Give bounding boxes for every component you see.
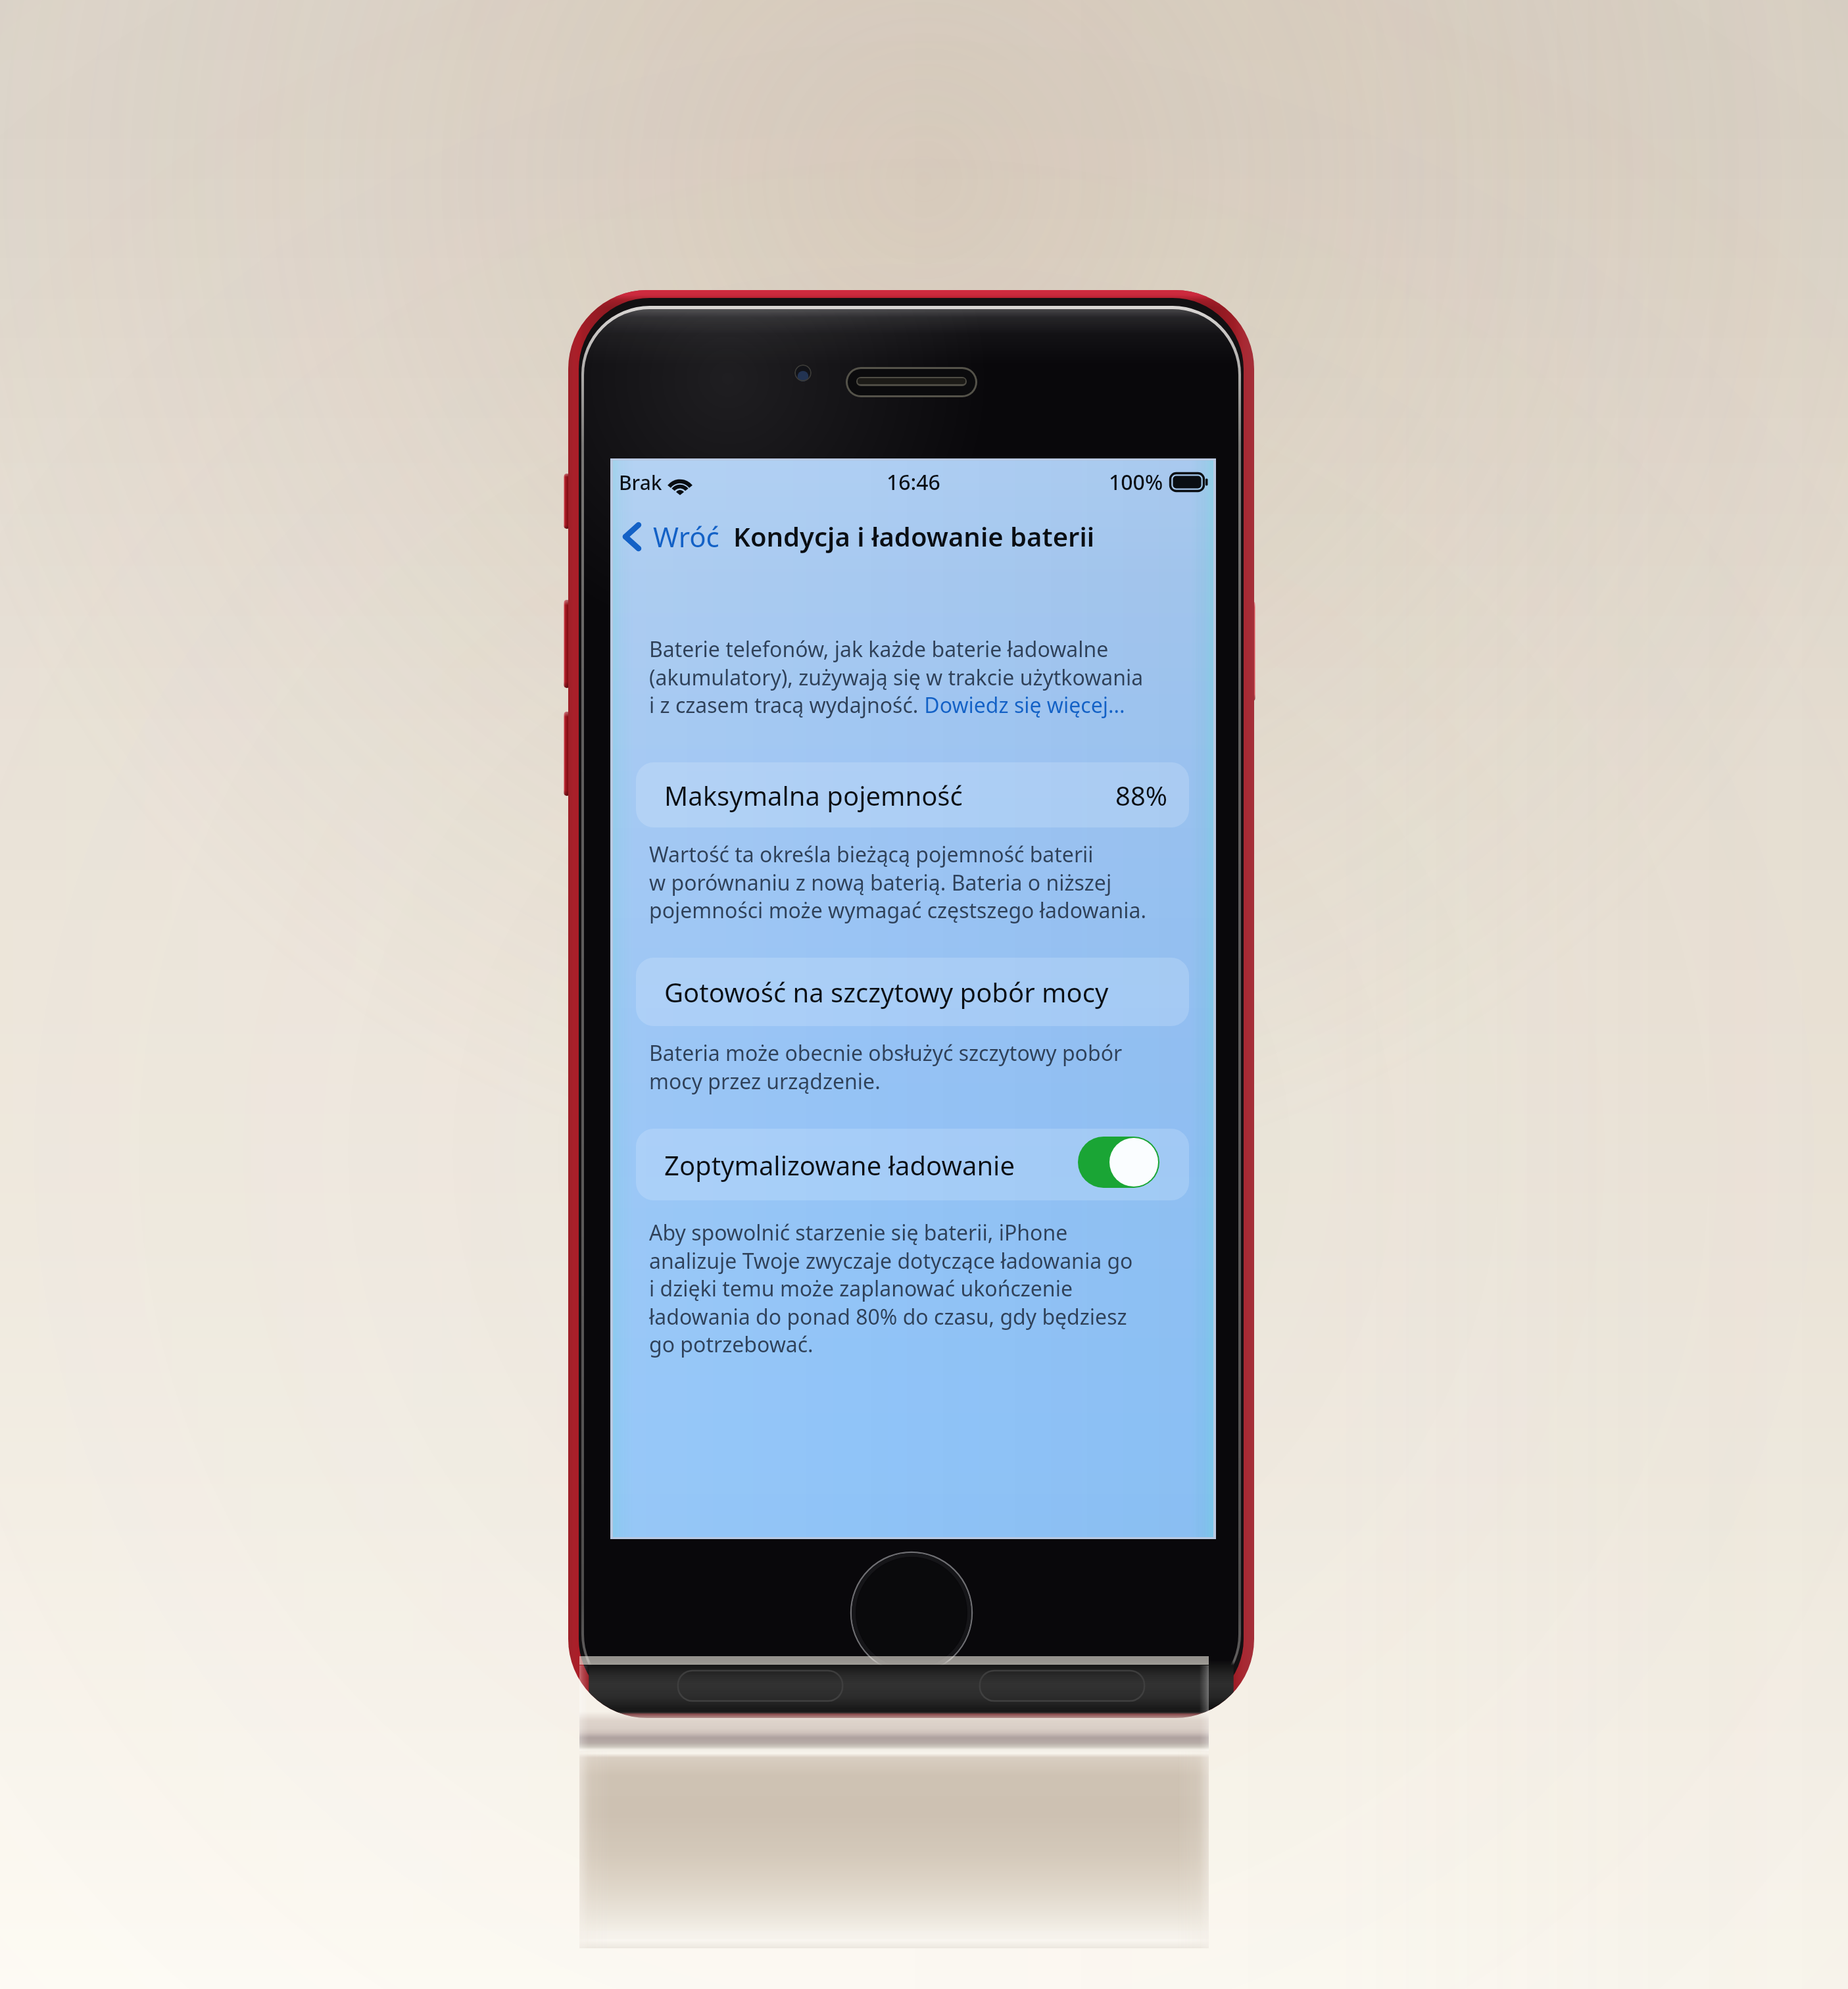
button[interactable]: Zoptymalizowane ładowanie <box>636 1129 1189 1200</box>
staticText: pojemności może wymagać częstszego ładow… <box>649 896 1147 925</box>
staticText: Aby spowolnić starzenie się baterii, iPh… <box>649 1218 1068 1247</box>
staticText: Maksymalna pojemność <box>664 777 963 813</box>
button[interactable]: Wróć <box>614 510 727 563</box>
staticText: 100% <box>1109 468 1163 497</box>
staticText: Bateria może obecnie obsłużyć szczytowy … <box>649 1039 1123 1068</box>
staticText: Wróć <box>653 518 719 555</box>
button[interactable]: Dowiedz się więcej... <box>919 691 1125 720</box>
staticText: Wartość ta określa bieżącą pojemność bat… <box>649 840 1094 869</box>
button[interactable]: Przycisk Początek <box>849 1550 974 1675</box>
staticText: Brak <box>619 469 662 496</box>
button[interactable]: Głośność <box>564 600 570 688</box>
staticText: analizuje Twoje zwyczaje dotyczące ładow… <box>649 1246 1133 1275</box>
button[interactable]: Gotowość na szczytowy pobór mocy <box>636 958 1189 1026</box>
staticText: w porównaniu z nową baterią. Bateria o n… <box>649 868 1112 897</box>
button[interactable]: Głośność <box>564 712 570 796</box>
button[interactable]: Przełącznik zoptymalizowanego ładowania <box>1078 1137 1159 1188</box>
staticText: Baterie telefonów, jak każde baterie ład… <box>649 635 1109 664</box>
staticText: Kondycja i ładowanie baterii <box>733 518 1095 554</box>
staticText: i dzięki temu może zaplanować ukończenie <box>649 1274 1073 1303</box>
staticText: Zoptymalizowane ładowanie <box>664 1147 1015 1183</box>
staticText: 88% <box>1115 777 1167 813</box>
staticText: ładowania do ponad 80% do czasu, gdy będ… <box>649 1302 1127 1331</box>
staticText: Gotowość na szczytowy pobór mocy <box>664 974 1109 1010</box>
button[interactable]: Głośność <box>564 474 570 529</box>
staticText: go potrzebować. <box>649 1330 814 1359</box>
staticText: 16:46 <box>887 468 940 497</box>
staticText: (akumulatory), zużywają się w trakcie uż… <box>649 663 1144 692</box>
staticText: mocy przez urządzenie. <box>649 1067 881 1096</box>
button[interactable]: Maksymalna pojemność <box>636 762 1189 827</box>
button[interactable]: Zasilanie <box>1249 601 1255 701</box>
staticText: i z czasem tracą wydajność. <box>649 691 919 720</box>
